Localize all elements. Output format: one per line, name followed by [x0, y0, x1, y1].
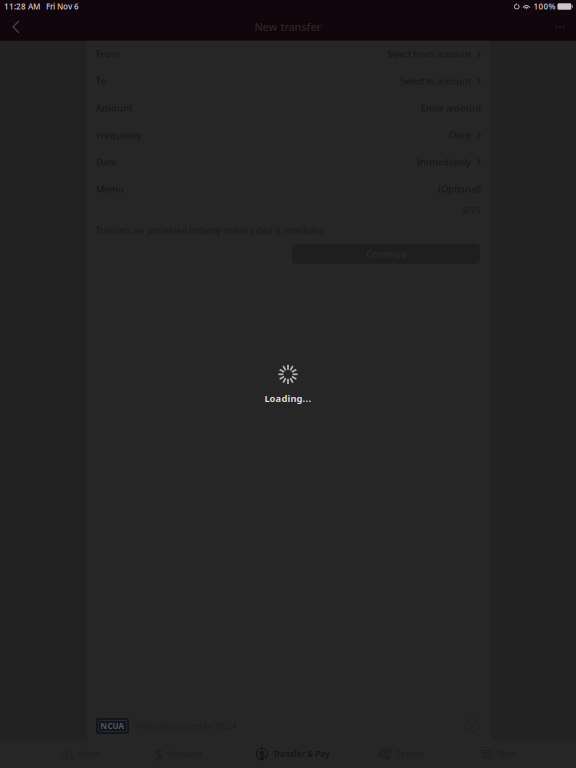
- button[interactable]: Back: [5, 13, 27, 40]
- staticText: Frequency: [96, 129, 142, 141]
- staticText: To: [96, 75, 107, 87]
- staticText: $: [154, 743, 163, 765]
- staticText: Immediately: [417, 156, 471, 168]
- staticText: Amount: [96, 102, 132, 114]
- staticText: Select from account: [387, 48, 471, 60]
- staticText: From: [96, 48, 120, 60]
- staticText: Memo: [96, 183, 124, 195]
- staticText: Fri Nov 6: [46, 1, 79, 12]
- staticText: Loading...: [264, 392, 311, 405]
- staticText: Date: [96, 156, 116, 168]
- staticText: 100%: [533, 1, 555, 12]
- staticText: New transfer: [254, 20, 321, 34]
- staticText: Select to account: [400, 75, 471, 87]
- staticText: Continue: [366, 248, 406, 260]
- button[interactable]: $: [255, 740, 329, 768]
- staticText: 11:28 AM: [4, 1, 40, 12]
- staticText: Once: [449, 129, 471, 141]
- staticText: $: [259, 747, 265, 761]
- staticText: (Optional): [438, 183, 481, 195]
- staticText: 0/75: [463, 205, 481, 216]
- staticText: NCUA: [100, 721, 124, 731]
- staticText: Transfers are processed instantly unless…: [96, 225, 325, 236]
- staticText: Transfer & Pay: [273, 749, 329, 759]
- staticText: Enter amount: [421, 102, 481, 114]
